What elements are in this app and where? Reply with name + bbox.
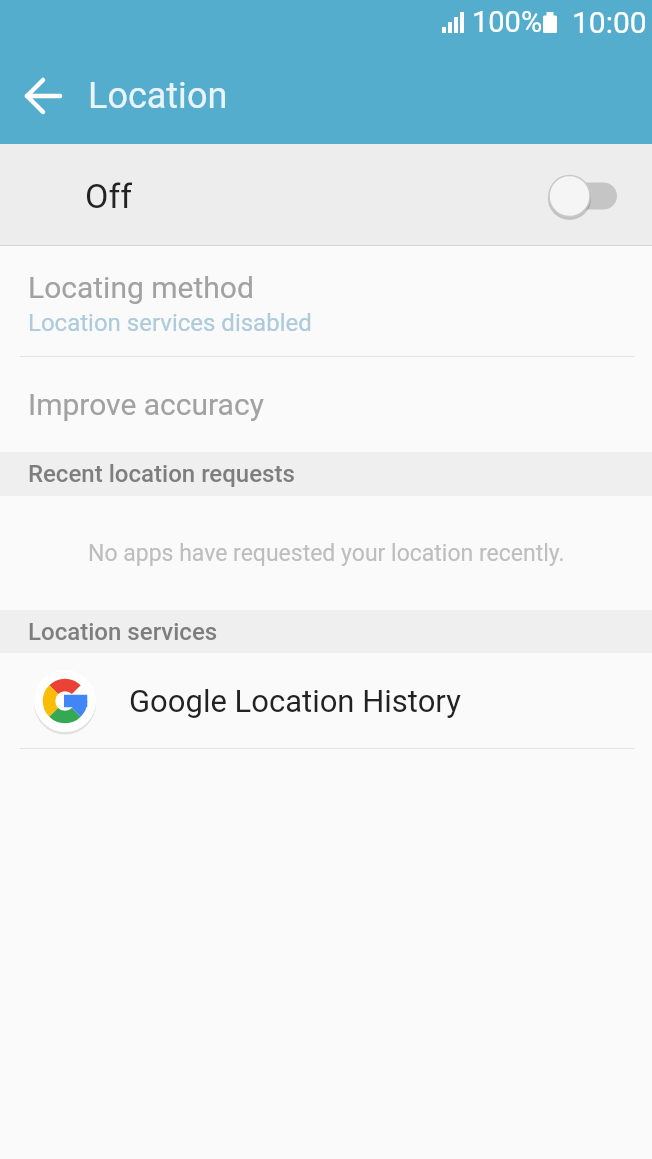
staticText: Off — [85, 176, 133, 216]
button[interactable]: Google Location History — [0, 653, 652, 748]
staticText: Improve accuracy — [28, 387, 264, 422]
button[interactable]: Improve accuracy — [0, 357, 652, 452]
staticText: No apps have requested your location rec… — [88, 540, 565, 567]
staticText: Locating method — [28, 270, 254, 305]
button[interactable]: Off — [0, 144, 652, 245]
button[interactable] — [26, 78, 62, 114]
staticText: Google Location History — [129, 683, 461, 719]
staticText: 10:00 — [572, 5, 647, 40]
staticText: Location services — [28, 618, 218, 646]
staticText: 100% — [472, 5, 543, 39]
staticText: Location services disabled — [28, 309, 312, 337]
staticText: Recent location requests — [28, 460, 295, 488]
staticText: Location — [88, 75, 228, 117]
button[interactable]: Locating method — [0, 246, 652, 356]
